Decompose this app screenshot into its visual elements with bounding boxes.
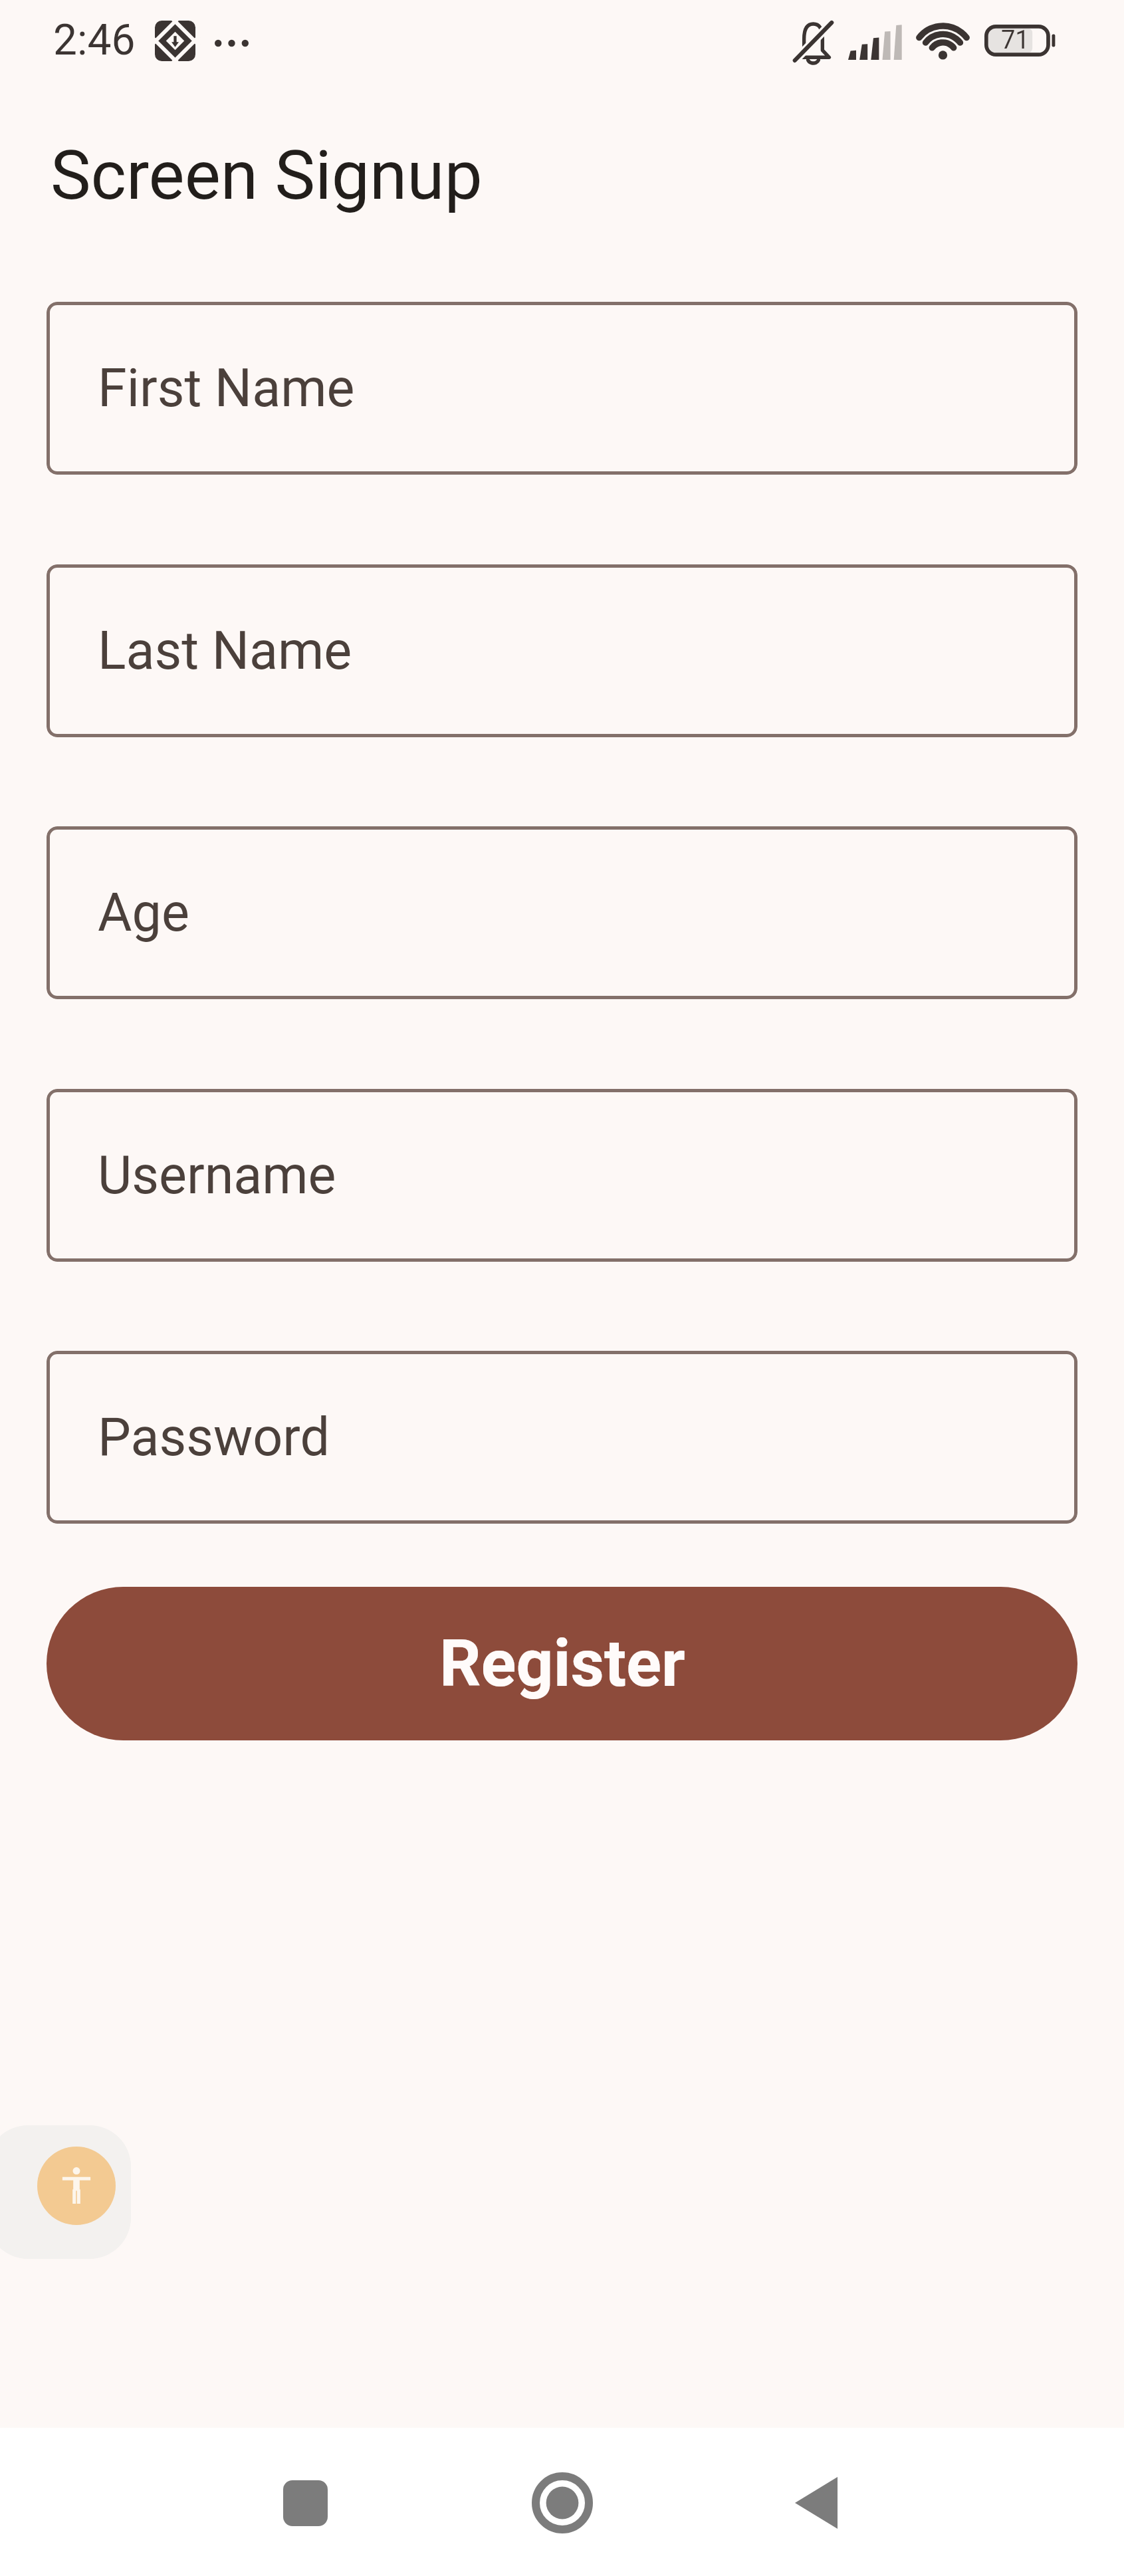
staticText: Age — [98, 882, 189, 944]
staticText: First Name — [98, 358, 355, 419]
staticText: Username — [98, 1145, 336, 1207]
staticText: Register — [439, 1625, 685, 1702]
button[interactable]: Recent apps — [252, 2450, 358, 2556]
button[interactable]: Username — [47, 1089, 1077, 1262]
staticText: 71 — [1001, 25, 1030, 55]
button[interactable]: First Name — [47, 302, 1077, 475]
staticText: 2:46 — [53, 15, 136, 65]
staticText: Last Name — [98, 620, 352, 682]
button[interactable]: Password — [47, 1351, 1077, 1524]
button[interactable]: Back — [763, 2450, 869, 2556]
button[interactable]: Register — [47, 1587, 1077, 1740]
button[interactable]: Home — [509, 2450, 616, 2556]
button[interactable]: Last Name — [47, 564, 1077, 737]
staticText: Screen Signup — [51, 136, 483, 215]
button[interactable]: Accessibility menu — [0, 2125, 131, 2259]
button[interactable]: Age — [47, 826, 1077, 999]
staticText: Password — [98, 1407, 330, 1468]
